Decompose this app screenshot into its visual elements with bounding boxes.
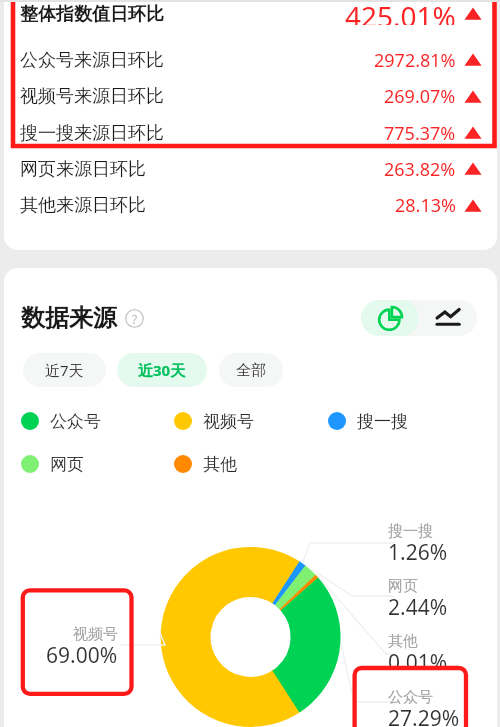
staticText: 近30天	[138, 360, 186, 380]
button[interactable]: 近7天	[23, 353, 106, 387]
staticText: 28.13%	[395, 193, 456, 218]
staticText: 0.01%	[388, 648, 448, 677]
button[interactable]: 近30天	[117, 353, 207, 387]
staticText: 775.37%	[384, 121, 456, 146]
staticText: 数据来源	[21, 303, 117, 333]
staticText: 其他来源日环比	[20, 194, 146, 217]
staticText: ?	[132, 311, 138, 327]
staticText: 27.29%	[388, 704, 460, 727]
staticText: 视频号来源日环比	[20, 85, 164, 108]
staticText: 263.82%	[384, 157, 456, 182]
staticText: 搜一搜	[388, 522, 433, 541]
staticText: 近7天	[45, 360, 84, 380]
staticText: 全部	[236, 361, 266, 380]
button[interactable]: 公众号来源日环比	[4, 42, 497, 78]
staticText: 1.26%	[388, 538, 448, 567]
staticText: 视频号	[203, 411, 254, 432]
staticText: 搜一搜	[357, 411, 408, 432]
staticText: 搜一搜来源日环比	[20, 122, 164, 145]
staticText: 69.00%	[46, 641, 118, 670]
staticText: 网页	[388, 577, 418, 596]
staticText: 2.44%	[388, 593, 448, 622]
button[interactable]: Pie chart view	[361, 300, 419, 336]
staticText: 其他	[203, 454, 237, 475]
staticText: 公众号	[50, 411, 101, 432]
button[interactable]: 其他来源日环比	[4, 187, 497, 224]
button[interactable]: Line chart view	[419, 300, 477, 336]
staticText: 网页来源日环比	[20, 158, 146, 181]
staticText: 269.07%	[384, 84, 456, 109]
staticText: 2972.81%	[374, 48, 456, 73]
button[interactable]: 全部	[219, 353, 283, 387]
staticText: 视频号	[73, 625, 118, 644]
button[interactable]: 网页来源日环比	[4, 151, 497, 187]
staticText: 整体指数值日环比	[20, 3, 164, 26]
button[interactable]: Help	[125, 309, 144, 328]
button[interactable]: 视频号来源日环比	[4, 78, 497, 115]
staticText: 425.01%	[345, 0, 456, 25]
button[interactable]: 整体指数值日环比	[4, 0, 497, 28]
staticText: 公众号	[388, 688, 433, 707]
button[interactable]: 搜一搜来源日环比	[4, 115, 497, 151]
staticText: 其他	[388, 632, 418, 651]
staticText: 公众号来源日环比	[20, 49, 164, 72]
staticText: 网页	[50, 454, 84, 475]
